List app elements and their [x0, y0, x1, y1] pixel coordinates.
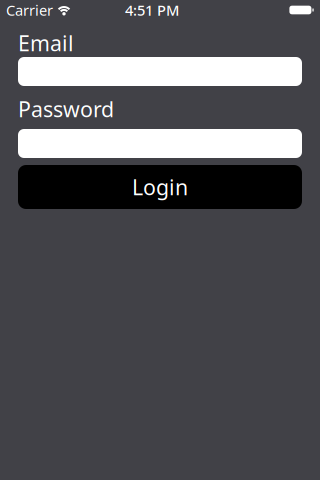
staticText: 4:51 PM: [125, 0, 179, 20]
staticText: Carrier: [6, 0, 53, 20]
staticText: Password: [18, 95, 114, 123]
button[interactable]: Login: [18, 165, 302, 209]
staticText: Login: [132, 173, 188, 201]
button[interactable]: Password: [18, 129, 302, 158]
staticText: Email: [18, 29, 74, 57]
button[interactable]: Email: [18, 57, 302, 86]
